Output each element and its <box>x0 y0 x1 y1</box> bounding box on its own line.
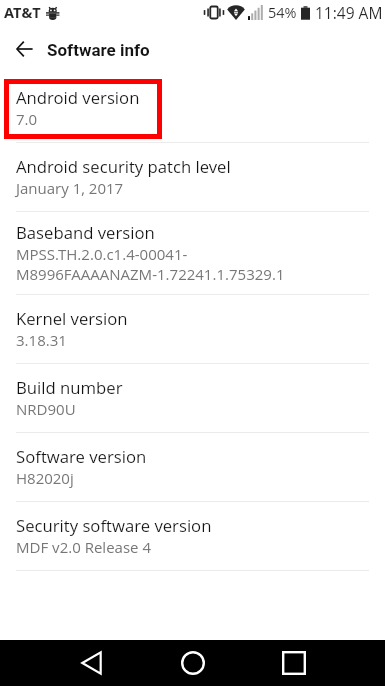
staticText: Kernel version <box>16 307 128 330</box>
button[interactable]: Security software version <box>0 502 385 571</box>
staticText: January 1, 2017 <box>16 178 124 198</box>
staticText: Android version <box>16 86 140 109</box>
button[interactable]: Build number <box>0 364 385 433</box>
button[interactable]: Android security patch level <box>0 143 385 212</box>
button[interactable]: Baseband version <box>0 212 385 295</box>
staticText: Build number <box>16 376 123 399</box>
staticText: Software version <box>16 445 147 468</box>
button[interactable]: Kernel version <box>0 295 385 364</box>
staticText: Software info <box>47 40 150 60</box>
staticText: Baseband version <box>16 221 155 244</box>
button[interactable]: Software version <box>0 433 385 502</box>
staticText: 7.0 <box>16 109 38 129</box>
button[interactable]: Back <box>0 27 48 71</box>
button[interactable]: Back <box>56 640 126 686</box>
staticText: MDF v2.0 Release 4 <box>16 537 151 557</box>
staticText: NRD90U <box>16 399 76 419</box>
staticText: 11:49 AM <box>315 2 383 23</box>
staticText: 54% <box>268 3 297 23</box>
staticText: M8996FAAAANAZM-1.72241.1.75329.1 <box>16 264 285 284</box>
button[interactable]: Home <box>158 640 228 686</box>
staticText: MPSS.TH.2.0.c1.4-00041- <box>16 244 188 264</box>
staticText: H82020j <box>16 468 74 488</box>
button[interactable]: Android version <box>0 74 385 143</box>
staticText: AT&T <box>4 3 41 23</box>
staticText: 3.18.31 <box>16 330 67 350</box>
staticText: Security software version <box>16 514 212 537</box>
staticText: Android security patch level <box>16 155 231 178</box>
button[interactable]: Recent apps <box>259 640 329 686</box>
